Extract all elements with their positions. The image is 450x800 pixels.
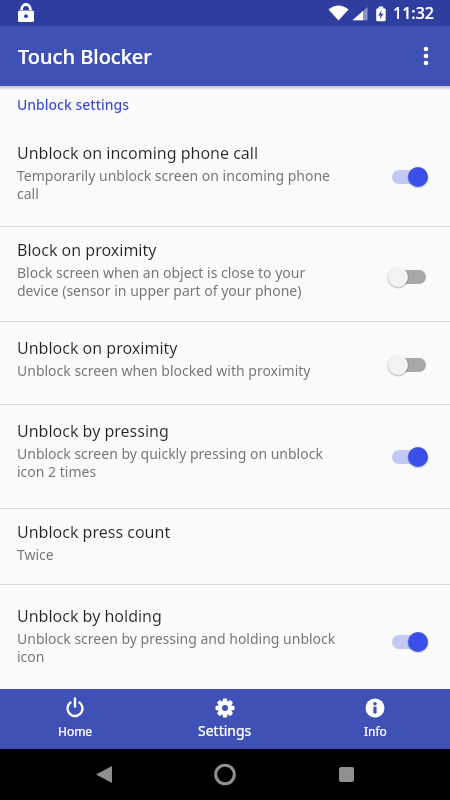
- button[interactable]: [0, 749, 150, 800]
- button[interactable]: Unblock by pressing: [0, 405, 450, 509]
- button[interactable]: Info: [300, 689, 450, 749]
- button[interactable]: Unblock on proximity: [0, 322, 450, 405]
- button[interactable]: [150, 749, 300, 800]
- staticText: Unblock by holding: [17, 605, 162, 627]
- staticText: Block screen when an object is close to …: [17, 263, 306, 300]
- staticText: Unblock on incoming phone call: [17, 142, 259, 164]
- button[interactable]: Settings: [150, 689, 300, 749]
- staticText: Unblock press count: [17, 521, 171, 543]
- button[interactable]: Unblock press count: [0, 509, 450, 585]
- staticText: Temporarily unblock screen on incoming p…: [17, 166, 330, 203]
- button[interactable]: [402, 32, 450, 80]
- staticText: Block on proximity: [17, 239, 157, 261]
- staticText: Twice: [17, 545, 54, 564]
- staticText: Touch Blocker: [18, 43, 152, 70]
- button[interactable]: Unblock on incoming phone call: [0, 142, 450, 227]
- staticText: Unblock on proximity: [17, 337, 178, 359]
- staticText: Unblock by pressing: [17, 420, 169, 442]
- button[interactable]: Unblock by holding: [0, 585, 450, 686]
- staticText: Unblock screen by quickly pressing on un…: [17, 444, 323, 481]
- staticText: Settings: [198, 721, 252, 740]
- staticText: Unblock settings: [17, 95, 130, 114]
- button[interactable]: [300, 749, 450, 800]
- staticText: Home: [58, 723, 93, 739]
- staticText: Unblock screen by pressing and holding u…: [17, 629, 336, 666]
- staticText: Info: [364, 723, 387, 739]
- staticText: 11:32: [393, 2, 434, 24]
- button[interactable]: Home: [0, 689, 150, 749]
- button[interactable]: Block on proximity: [0, 227, 450, 322]
- staticText: Unblock screen when blocked with proximi…: [17, 361, 311, 380]
